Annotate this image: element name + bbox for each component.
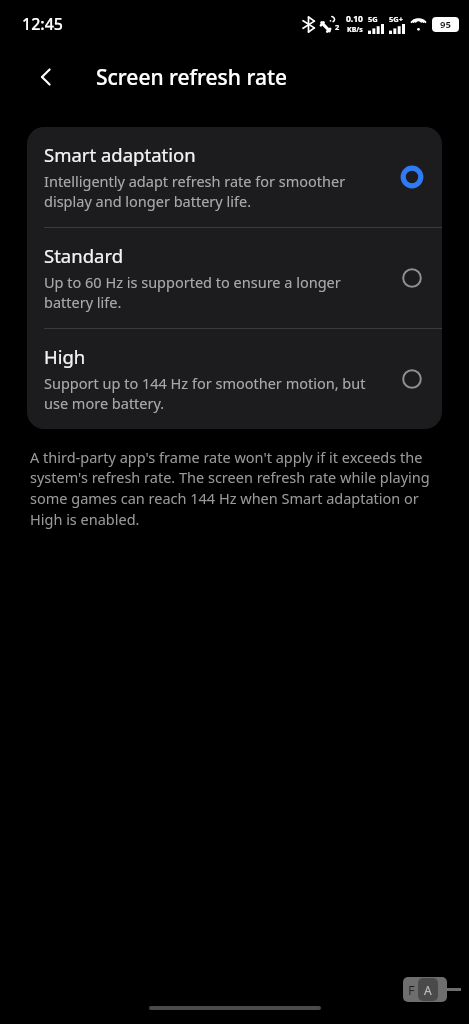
staticText: High — [44, 344, 86, 369]
staticText: Up to 60 Hz is supported to ensure a lon… — [44, 272, 387, 313]
staticText: 5G — [368, 14, 378, 24]
staticText: A third-party app's frame rate won't app… — [30, 447, 439, 530]
staticText: Smart adaptation — [44, 142, 196, 167]
button[interactable]: Standard — [27, 228, 442, 328]
staticText: Standard — [44, 243, 124, 268]
staticText: Intelligently adapt refresh rate for smo… — [44, 171, 387, 212]
button[interactable]: Floating assistant — [403, 977, 447, 1002]
staticText: Screen refresh rate — [96, 63, 287, 92]
staticText: 2 — [335, 22, 340, 32]
staticText: 0.10 — [346, 13, 363, 25]
button[interactable]: Smart adaptation — [27, 127, 442, 227]
staticText: 5G+ — [389, 14, 404, 24]
staticText: 95 — [440, 18, 451, 31]
staticText: 12:45 — [22, 13, 63, 35]
button[interactable]: High — [27, 329, 442, 429]
button[interactable]: Back — [22, 53, 70, 101]
staticText: KB/s — [347, 25, 363, 35]
staticText: F — [408, 981, 415, 999]
staticText: Support up to 144 Hz for smoother motion… — [44, 373, 387, 414]
staticText: A — [424, 982, 432, 998]
